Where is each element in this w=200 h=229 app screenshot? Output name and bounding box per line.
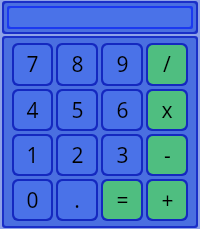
staticText: 8 (71, 50, 84, 79)
staticText: 7 (26, 50, 39, 79)
staticText: 3 (116, 141, 129, 170)
button[interactable]: 3 (103, 136, 141, 174)
button[interactable]: = (103, 181, 141, 219)
staticText: 2 (71, 141, 84, 170)
staticText: 5 (71, 96, 84, 125)
staticText: . (74, 186, 80, 215)
staticText: 6 (116, 96, 129, 125)
staticText: x (161, 96, 173, 125)
staticText: + (161, 186, 174, 215)
button[interactable]: 0 (14, 181, 51, 219)
button[interactable]: x (148, 91, 186, 129)
button[interactable]: - (148, 136, 186, 174)
button[interactable]: + (148, 181, 186, 219)
button[interactable]: 4 (14, 91, 51, 129)
button[interactable]: 2 (58, 136, 96, 174)
staticText: = (116, 186, 129, 215)
staticText: 9 (116, 50, 129, 79)
staticText: 4 (26, 96, 39, 125)
button[interactable]: 5 (58, 91, 96, 129)
button[interactable]: 6 (103, 91, 141, 129)
button[interactable]: 9 (103, 45, 141, 84)
button[interactable]: 7 (14, 45, 51, 84)
staticText: / (163, 50, 171, 79)
button[interactable]: . (58, 181, 96, 219)
button[interactable]: 1 (14, 136, 51, 174)
button[interactable]: / (148, 45, 186, 84)
button[interactable]: 8 (58, 45, 96, 84)
staticText: 0 (26, 186, 39, 215)
staticText: 1 (26, 141, 39, 170)
staticText: - (164, 141, 171, 170)
